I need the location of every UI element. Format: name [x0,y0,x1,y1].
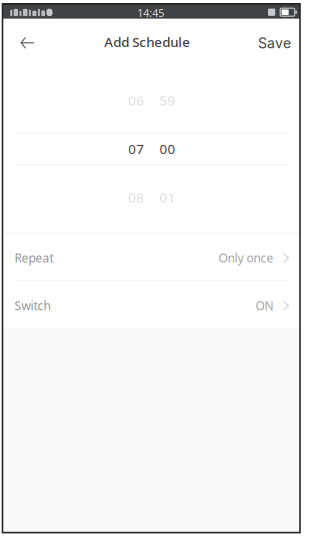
staticText: 14:45 [137,6,164,20]
staticText: Switch [14,298,50,314]
button[interactable]: Repeat [2,236,300,280]
staticText: Repeat [14,250,53,266]
staticText: Add Schedule [104,33,190,51]
staticText: Save [258,34,291,52]
staticText: 59 [160,91,176,109]
staticText: Only once [218,250,273,266]
staticText: 01 [160,188,176,206]
staticText: 08 [128,188,144,206]
staticText: 07 [128,140,144,158]
button[interactable]: Save [252,19,300,56]
button[interactable]: Switch [2,281,300,328]
staticText: 00 [160,140,176,158]
staticText: 06 [128,91,144,109]
staticText: ON [255,298,273,314]
button[interactable]: Back [2,19,48,56]
